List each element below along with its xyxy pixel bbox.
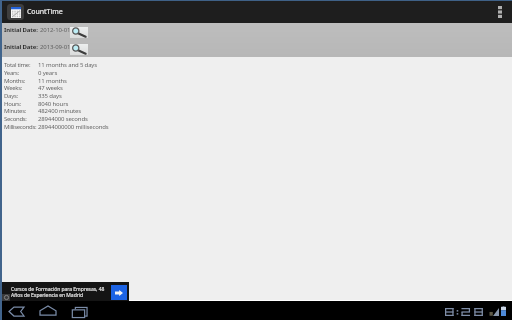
staticText: Años de Experiencia en Madrid: [11, 292, 84, 299]
button[interactable]: Recent apps: [68, 302, 92, 319]
staticText: Cursos de Formación para Empresas, 48: [11, 286, 105, 293]
staticText: 2013-09-01: [40, 43, 71, 51]
staticText: 28944000000 milliseconds: [38, 123, 109, 131]
staticText: Initial Date:: [4, 43, 38, 51]
staticText: 11 months and 5 days: [38, 61, 97, 69]
button[interactable]: Cursos de Formación para Empresas, 48: [0, 282, 129, 301]
staticText: Total time:: [4, 61, 31, 69]
staticText: CountTime: [27, 7, 63, 17]
staticText: 2012-10-01: [40, 26, 71, 34]
staticText: 28944000 seconds: [38, 115, 88, 123]
button[interactable]: Home: [36, 302, 60, 319]
staticText: Minutes:: [4, 107, 27, 115]
staticText: 8040 hours: [38, 100, 69, 108]
staticText: 335 days: [38, 92, 62, 100]
button[interactable]: Open advertisement: [111, 285, 127, 300]
staticText: Months:: [4, 77, 26, 85]
staticText: Milliseconds:: [4, 123, 37, 131]
staticText: 482400 minutes: [38, 107, 82, 115]
staticText: Hours:: [4, 100, 21, 108]
button[interactable]: Back: [4, 302, 27, 319]
staticText: Initial Date:: [4, 26, 38, 34]
staticText: 0 years: [38, 69, 58, 77]
button[interactable]: Initial Date:: [4, 26, 71, 34]
button[interactable]: Pick date: [70, 44, 88, 55]
button[interactable]: Pick date: [70, 27, 88, 38]
staticText: Seconds:: [4, 115, 27, 123]
staticText: 47 weeks: [38, 84, 63, 92]
button[interactable]: CountTime: [7, 3, 63, 20]
staticText: Weeks:: [4, 84, 23, 92]
staticText: Days:: [4, 92, 18, 100]
staticText: 11 months: [38, 77, 67, 85]
button[interactable]: More options: [492, 1, 509, 23]
button[interactable]: Initial Date:: [4, 43, 71, 51]
staticText: Years:: [4, 69, 20, 77]
